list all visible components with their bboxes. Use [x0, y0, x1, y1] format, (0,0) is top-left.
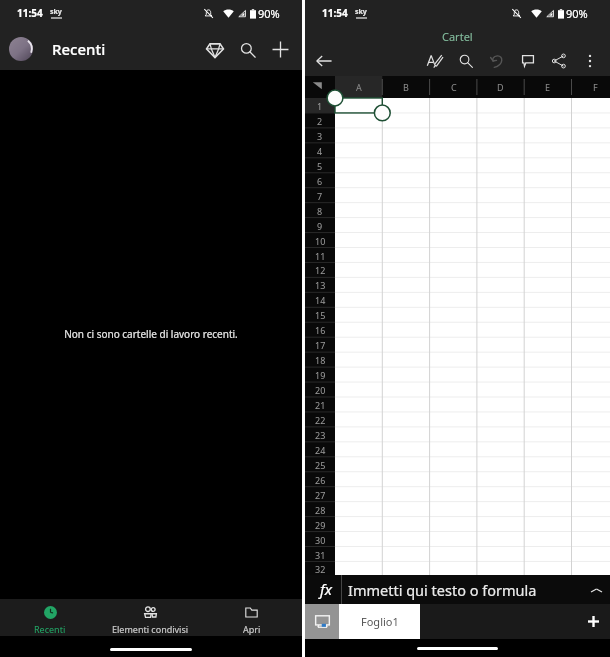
staticText: 24 — [315, 444, 326, 456]
staticText: 9 — [317, 220, 323, 232]
button[interactable]: Recenti — [0, 599, 100, 636]
staticText: 11:54 — [322, 6, 348, 20]
staticText: Elementi condivisi — [112, 623, 189, 635]
staticText: Recenti — [52, 39, 106, 59]
button[interactable]: Elementi condivisi — [100, 599, 201, 636]
staticText: 1 — [317, 100, 323, 112]
staticText: 5 — [317, 160, 323, 172]
staticText: 90% — [258, 6, 280, 21]
staticText: 13 — [315, 279, 326, 291]
button[interactable]: Premium — [198, 33, 231, 66]
button[interactable]: Add sheet — [420, 604, 610, 639]
staticText: 7 — [317, 190, 323, 202]
button[interactable]: New — [264, 33, 297, 66]
staticText: 23 — [315, 429, 326, 441]
staticText: 25 — [315, 459, 326, 471]
staticText: 28 — [315, 504, 326, 516]
button[interactable]: Account — [9, 37, 33, 61]
button[interactable]: Undo — [481, 46, 512, 76]
button[interactable]: Search — [450, 46, 481, 76]
staticText: 11:54 — [17, 6, 43, 20]
staticText: Apri — [243, 623, 261, 635]
button[interactable]: Back — [311, 48, 337, 74]
staticText: 4 — [317, 145, 323, 157]
staticText: 31 — [315, 549, 326, 561]
staticText: 17 — [315, 339, 326, 351]
staticText: 15 — [315, 309, 326, 321]
staticText: 3 — [317, 130, 323, 142]
button[interactable]: Apri — [201, 599, 302, 636]
staticText: 32 — [315, 563, 326, 575]
staticText: 18 — [315, 354, 326, 366]
staticText: Foglio1 — [361, 614, 399, 629]
staticText: 20 — [315, 384, 326, 396]
staticText: 19 — [315, 369, 326, 381]
button[interactable]: Share — [543, 46, 574, 76]
button[interactable]: Search — [231, 33, 264, 66]
staticText: Cartel — [442, 29, 473, 44]
staticText: F — [593, 81, 598, 93]
staticText: Recenti — [34, 623, 66, 635]
staticText: fx — [320, 579, 333, 599]
staticText: C — [451, 81, 457, 93]
staticText: 6 — [317, 175, 323, 187]
staticText: Non ci sono cartelle di lavoro recenti. — [64, 327, 238, 341]
staticText: 14 — [315, 294, 326, 306]
staticText: A — [356, 81, 362, 93]
staticText: 10 — [315, 235, 326, 247]
staticText: 8 — [317, 205, 323, 217]
staticText: 30 — [315, 534, 326, 546]
staticText: 22 — [315, 414, 326, 426]
staticText: 11 — [315, 250, 326, 262]
staticText: E — [545, 81, 551, 93]
staticText: 29 — [315, 519, 326, 531]
staticText: 21 — [315, 399, 326, 411]
staticText: 12 — [315, 264, 326, 276]
staticText: 26 — [315, 474, 326, 486]
staticText: 34 — [315, 593, 326, 605]
staticText: 27 — [315, 489, 326, 501]
button[interactable]: Expand formula bar — [582, 576, 610, 604]
staticText: Immetti qui testo o formula — [348, 580, 537, 600]
button[interactable]: Edit — [419, 46, 450, 76]
staticText: 2 — [317, 115, 323, 127]
staticText: B — [403, 81, 409, 93]
staticText: sky — [50, 7, 62, 17]
button[interactable]: Foglio1 — [339, 604, 420, 639]
button[interactable]: Sheet view — [305, 604, 339, 639]
staticText: 90% — [566, 6, 588, 21]
staticText: 16 — [315, 324, 326, 336]
staticText: 33 — [315, 578, 326, 590]
staticText: sky — [355, 7, 367, 17]
staticText: D — [497, 81, 504, 93]
button[interactable]: More options — [574, 46, 605, 76]
button[interactable]: Comment — [512, 46, 543, 76]
